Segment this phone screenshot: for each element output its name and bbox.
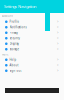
staticText: Help — [10, 58, 17, 61]
staticText: > — [57, 69, 59, 72]
staticText: Settings Navigation — [4, 4, 36, 9]
button[interactable]: About — [0, 62, 64, 68]
button[interactable]: Sign out — [0, 68, 64, 73]
staticText: > — [57, 42, 59, 45]
staticText: > — [57, 20, 59, 23]
staticText: Privacy — [10, 31, 18, 34]
staticText: Sign out — [10, 69, 22, 72]
staticText: > — [57, 31, 59, 34]
staticText: > — [57, 63, 59, 67]
staticText: Storage — [10, 47, 20, 51]
button[interactable]: Profile — [0, 19, 64, 24]
button[interactable]: Help — [0, 57, 64, 62]
staticText: More — [2, 53, 9, 56]
staticText: Account — [2, 14, 13, 18]
staticText: > — [57, 58, 59, 61]
staticText: About — [10, 63, 19, 67]
button[interactable]: Display — [0, 41, 64, 46]
staticText: Security — [10, 36, 20, 40]
staticText: Notifications — [10, 25, 27, 29]
staticText: > — [57, 25, 59, 29]
button[interactable]: Storage — [0, 46, 64, 52]
staticText: > — [57, 47, 59, 51]
staticText: Display — [10, 42, 19, 45]
button[interactable]: Notifications — [0, 24, 64, 30]
staticText: Profile — [10, 20, 20, 23]
button[interactable]: Security — [0, 35, 64, 41]
staticText: > — [57, 36, 59, 40]
button[interactable]: Privacy — [0, 30, 64, 35]
